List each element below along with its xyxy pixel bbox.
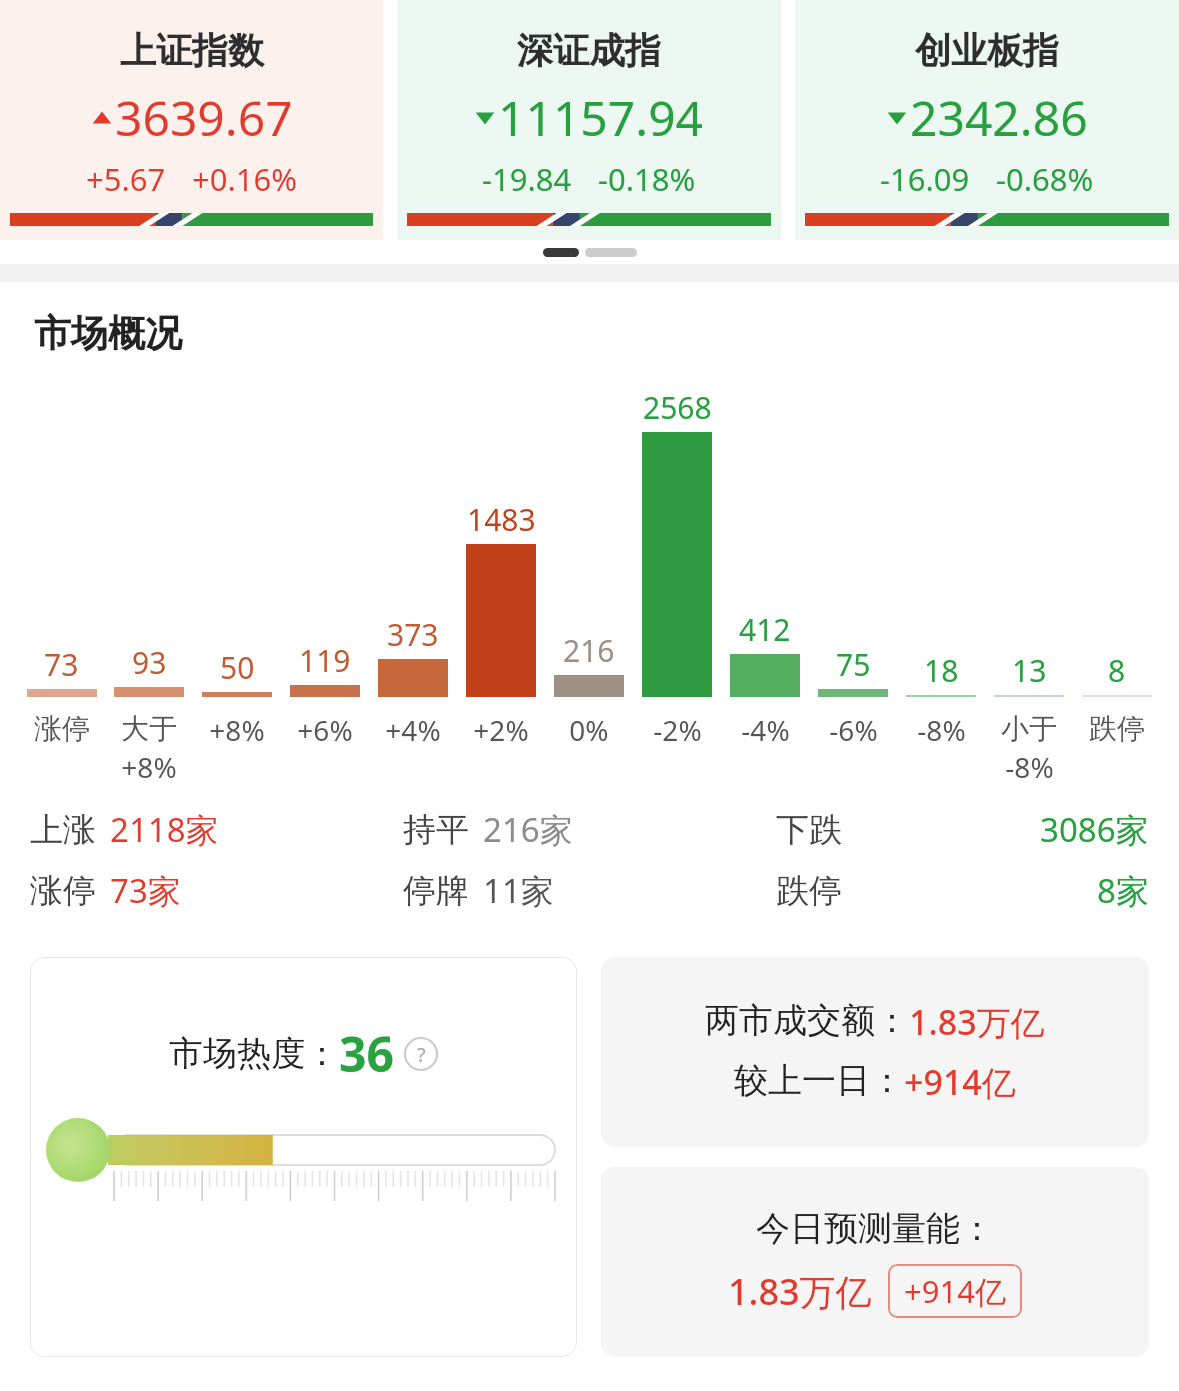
staticText: 市场热度： [169,1032,339,1075]
button[interactable]: 创业板指 [795,0,1179,240]
button[interactable]: 深证成指 [397,0,781,240]
button[interactable]: 帮助 [404,1037,438,1071]
staticText: +8% [121,748,177,786]
staticText: 50 [220,647,255,688]
staticText: ? [417,1041,426,1068]
staticText: +6% [297,711,353,749]
staticText: 较上一日： [734,1059,904,1102]
staticText: 2118家 [110,807,219,852]
staticText: 3086家 [1040,807,1149,852]
staticText: 18 [924,650,959,691]
staticText: 2568 [643,387,712,428]
staticText: 持平 [403,809,469,851]
staticText: -0.18% [598,158,696,200]
staticText: 1.83万亿 [728,1267,872,1316]
staticText: +914亿 [904,1059,1016,1105]
staticText: -16.09 [880,158,970,200]
staticText: 上涨 [30,809,96,851]
staticText: 36 [339,1021,394,1086]
staticText: -6% [829,711,878,749]
staticText: 0% [569,711,609,749]
button[interactable]: 市场热度： [30,957,577,1357]
staticText: 412 [739,609,791,650]
staticText: -2% [653,711,702,749]
staticText: 8家 [1097,868,1149,913]
staticText: 119 [299,640,351,681]
button[interactable]: 两市成交额： [601,957,1149,1147]
staticText: 创业板指 [915,28,1059,73]
staticText: 涨停 [34,711,90,746]
staticText: 涨停 [30,870,96,912]
staticText: 跌停 [776,870,842,912]
staticText: 大于 [121,711,177,746]
staticText: 216 [563,630,615,671]
staticText: 11157.94 [498,85,704,150]
staticText: +0.16% [192,158,297,200]
staticText: 93 [132,642,167,683]
staticText: 1483 [467,499,536,540]
staticText: 今日预测量能： [756,1207,994,1250]
staticText: 2342.86 [910,85,1088,150]
button[interactable]: +914亿 [904,1270,1006,1312]
staticText: -4% [741,711,790,749]
staticText: 跌停 [1089,711,1145,746]
staticText: 73家 [110,868,181,913]
button[interactable]: 今日预测量能： [601,1167,1149,1357]
staticText: 11家 [483,868,554,913]
staticText: +5.67 [86,158,166,200]
staticText: 13 [1012,650,1047,691]
staticText: -0.68% [996,158,1094,200]
staticText: 373 [387,614,439,655]
staticText: -8% [917,711,966,749]
staticText: 停牌 [403,870,469,912]
staticText: 73 [44,644,79,685]
staticText: 216家 [483,807,573,852]
staticText: 上证指数 [120,28,264,73]
button[interactable]: 上证指数 [0,0,383,240]
staticText: 75 [836,644,871,685]
staticText: -19.84 [482,158,572,200]
staticText: 下跌 [776,809,842,851]
staticText: -8% [1005,748,1054,786]
staticText: 小于 [1001,711,1057,746]
staticText: +2% [473,711,529,749]
staticText: +4% [385,711,441,749]
staticText: 市场概况 [34,310,182,357]
staticText: 8 [1108,650,1126,691]
staticText: 两市成交额： [705,999,909,1042]
staticText: 深证成指 [517,28,661,73]
staticText: +8% [209,711,265,749]
staticText: 1.83万亿 [909,999,1045,1045]
staticText: +914亿 [904,1270,1006,1312]
staticText: 3639.67 [115,85,293,150]
